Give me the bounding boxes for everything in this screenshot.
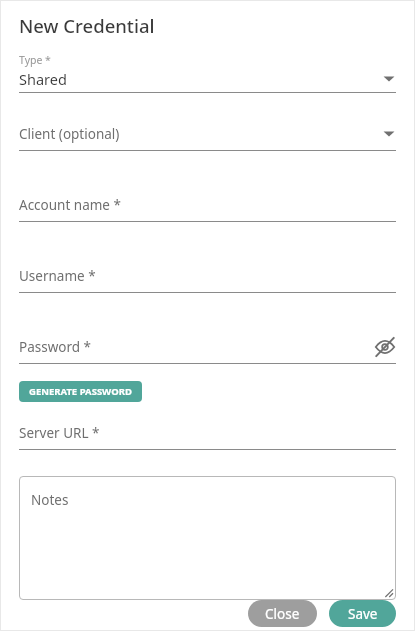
staticText: Client (optional) — [19, 125, 120, 143]
button[interactable]: Notes — [19, 476, 396, 600]
button[interactable]: Client (optional) — [19, 121, 396, 151]
button[interactable]: Server URL * — [19, 420, 396, 450]
staticText: Username * — [19, 267, 96, 285]
staticText: Server URL * — [19, 424, 100, 442]
staticText: Password * — [19, 338, 92, 356]
button[interactable]: Account name * — [19, 192, 396, 222]
staticText: Notes — [31, 491, 69, 509]
button[interactable]: Password * — [19, 334, 396, 364]
staticText: Account name * — [19, 196, 121, 214]
staticText: Save — [348, 605, 378, 623]
staticText: New Credential — [19, 13, 155, 38]
button[interactable]: GENERATE PASSWORD — [19, 381, 142, 402]
staticText: Shared — [19, 69, 67, 89]
button[interactable]: Close — [248, 600, 317, 627]
staticText: Close — [265, 605, 300, 623]
button[interactable]: Username * — [19, 263, 396, 293]
button[interactable]: Save — [329, 600, 396, 627]
staticText: Type * — [19, 53, 51, 67]
button[interactable]: Type * — [19, 53, 396, 93]
staticText: GENERATE PASSWORD — [29, 385, 132, 398]
button[interactable]: Toggle password visibility — [374, 336, 396, 358]
